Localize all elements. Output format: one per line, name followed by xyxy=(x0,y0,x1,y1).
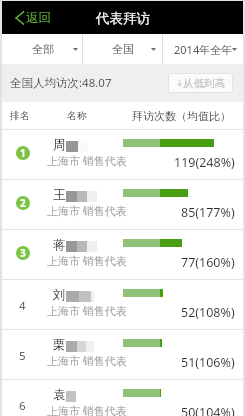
staticText: 从低到高 xyxy=(183,77,225,90)
button[interactable]: 6 xyxy=(2,380,243,416)
staticText: 全部 xyxy=(32,42,54,56)
staticText: 85(177%) xyxy=(181,204,235,221)
staticText: 名称 xyxy=(67,109,87,122)
button[interactable]: 3 xyxy=(2,230,243,279)
staticText: 排名 xyxy=(10,109,30,122)
staticText: 全国 xyxy=(112,42,134,56)
staticText: 王 xyxy=(53,187,66,203)
button[interactable]: 1 xyxy=(2,130,243,179)
staticText: 77(160%) xyxy=(181,254,235,271)
staticText: 周 xyxy=(53,137,66,153)
staticText: 刘 xyxy=(53,287,66,303)
staticText: 4 xyxy=(19,298,26,314)
staticText: 全国人均访次:48.07 xyxy=(10,75,112,91)
staticText: 蒋 xyxy=(53,237,66,253)
staticText: 51(106%) xyxy=(181,354,235,371)
staticText: 50(104%) xyxy=(181,404,235,416)
staticText: 119(248%) xyxy=(174,154,235,171)
staticText: 返回 xyxy=(26,10,51,26)
staticText: 3 xyxy=(20,246,26,260)
button[interactable]: 全部 xyxy=(2,34,83,64)
button[interactable]: 从低到高 xyxy=(168,73,233,93)
staticText: 6 xyxy=(19,398,26,414)
button[interactable]: 全国 xyxy=(83,34,163,64)
staticText: 代表拜访 xyxy=(96,10,150,27)
staticText: 2 xyxy=(20,196,26,210)
staticText: 袁 xyxy=(53,387,66,403)
other: Back xyxy=(15,11,24,25)
staticText: 上海市 销售代表 xyxy=(47,303,127,318)
staticText: 52(108%) xyxy=(181,304,235,321)
button[interactable]: Back xyxy=(2,3,59,33)
button[interactable]: 4 xyxy=(2,280,243,329)
button[interactable]: 2014年全年 xyxy=(163,34,243,64)
staticText: 2014年全年 xyxy=(174,42,233,57)
staticText: 5 xyxy=(19,348,26,364)
staticText: 上海市 销售代表 xyxy=(47,153,127,168)
staticText: 上海市 销售代表 xyxy=(47,403,127,416)
staticText: 上海市 销售代表 xyxy=(47,353,127,368)
button[interactable]: 5 xyxy=(2,330,243,379)
staticText: 上海市 销售代表 xyxy=(47,203,127,218)
staticText: 拜访次数（均值比） xyxy=(132,109,231,123)
staticText: 栗 xyxy=(53,337,66,353)
button[interactable]: 2 xyxy=(2,180,243,229)
staticText: 1 xyxy=(20,146,26,160)
staticText: 上海市 销售代表 xyxy=(47,253,127,268)
